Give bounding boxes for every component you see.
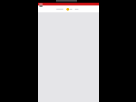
button[interactable]: Header row (38, 5, 99, 12)
button[interactable]: App bar (38, 3, 99, 6)
